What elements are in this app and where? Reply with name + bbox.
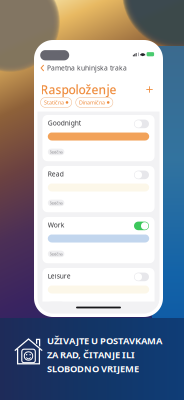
staticText: Statična [50,251,63,256]
staticText: Leisure [48,272,71,280]
button[interactable]: Statična [48,149,64,155]
staticText: Dinamična [79,99,105,106]
staticText: Goodnight [48,119,81,127]
staticText: UŽIVAJTE U POSTAVKAMA [47,334,162,347]
button[interactable]: Turn off [134,222,149,230]
button[interactable]: Pametna kuhinjska traka [37,62,159,74]
staticText: SLOBODNO VRIJEME [47,362,139,375]
button[interactable]: Add mood [143,83,155,95]
staticText: Raspoloženje [40,81,116,97]
staticText: Pametna kuhinjska traka [47,64,127,72]
button[interactable]: Statična [40,97,72,107]
staticText: Work [48,221,65,229]
button[interactable]: Turn on [134,273,149,281]
button[interactable]: Turn on [134,120,149,128]
staticText: Read [48,170,64,178]
staticText: ZA RAD, ČITANJE ILI [47,348,135,361]
staticText: Statična [50,149,63,154]
button[interactable]: Statična [48,200,64,206]
button[interactable]: Statična [48,251,64,257]
staticText: Statična [44,99,64,106]
staticText: Statična [50,200,63,205]
button[interactable]: Turn on [134,171,149,179]
button[interactable]: Dinamična [76,97,113,107]
